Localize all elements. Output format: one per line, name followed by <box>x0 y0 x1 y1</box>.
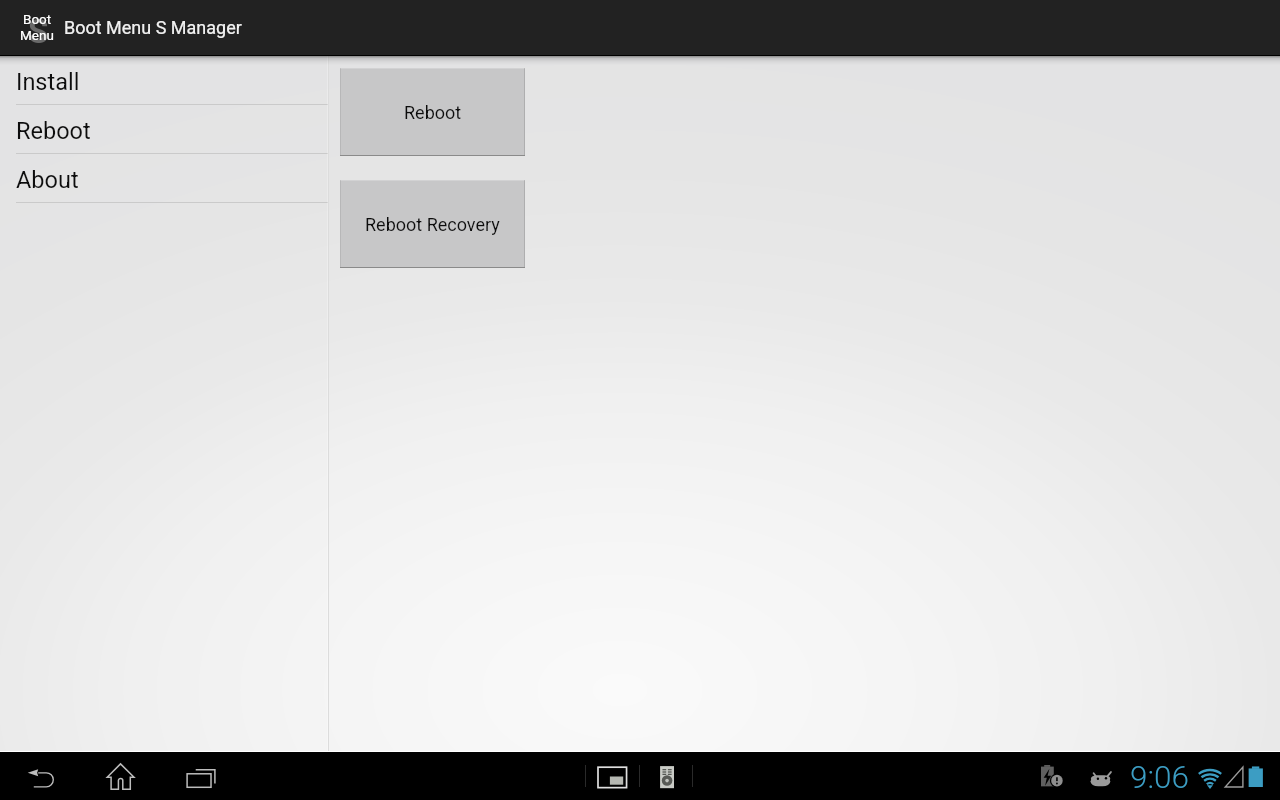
staticText: Reboot <box>404 102 462 123</box>
staticText: 9:06 <box>1130 759 1190 796</box>
button[interactable]: Install <box>0 56 329 105</box>
button[interactable]: Remote control <box>647 753 687 800</box>
staticText: Boot Menu S Manager <box>64 17 242 38</box>
staticText: About <box>16 166 79 194</box>
staticText: Reboot <box>16 117 91 145</box>
button[interactable]: Back <box>16 753 64 800</box>
staticText: S <box>28 12 49 51</box>
button[interactable]: Reboot <box>340 68 525 156</box>
button[interactable]: Reboot Recovery <box>340 180 525 268</box>
staticText: Reboot Recovery <box>365 214 500 235</box>
button[interactable]: Reboot <box>0 105 329 154</box>
button[interactable]: Recent apps <box>176 753 224 800</box>
staticText: Install <box>16 68 80 96</box>
staticText: Menu <box>20 27 54 43</box>
button[interactable]: Home <box>96 753 144 800</box>
button[interactable]: Screen compatibility <box>592 753 632 800</box>
button[interactable]: About <box>0 154 329 203</box>
staticText: Boot <box>23 11 52 27</box>
